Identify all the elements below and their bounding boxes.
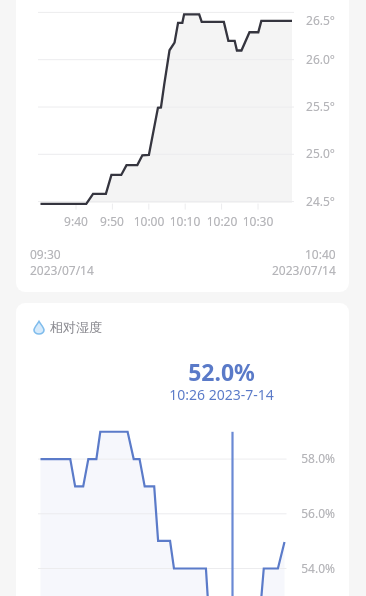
button[interactable] xyxy=(16,303,349,596)
staticText: 56.0% xyxy=(290,505,335,521)
staticText: 9:50 xyxy=(87,213,137,229)
staticText: 25.5° xyxy=(295,98,335,114)
staticText: 10:20 xyxy=(197,213,247,229)
staticText: 相对湿度 xyxy=(50,319,102,335)
staticText: 25.0° xyxy=(295,145,335,161)
button[interactable] xyxy=(16,0,349,292)
staticText: 10:00 xyxy=(124,213,174,229)
staticText: 10:10 xyxy=(160,213,210,229)
button[interactable]: 相对湿度 xyxy=(34,319,102,335)
staticText: 09:30 xyxy=(30,246,61,262)
staticText: 26.0° xyxy=(295,51,335,67)
staticText: 26.5° xyxy=(295,12,335,28)
staticText: 10:30 xyxy=(233,213,283,229)
staticText: 54.0% xyxy=(290,560,335,576)
staticText: 9:40 xyxy=(51,213,101,229)
staticText: 2023/07/14 xyxy=(30,262,94,278)
staticText: 52.0% xyxy=(121,356,322,387)
staticText: 10:40 xyxy=(305,246,336,262)
staticText: 24.5° xyxy=(295,193,335,209)
staticText: 10:26 2023-7-14 xyxy=(121,385,322,404)
staticText: 2023/07/14 xyxy=(272,262,336,278)
staticText: 58.0% xyxy=(290,450,335,466)
